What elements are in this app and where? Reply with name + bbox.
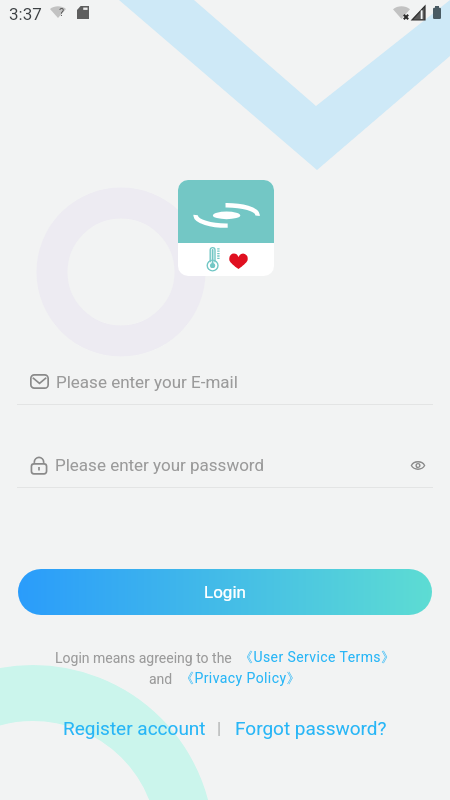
staticText: Forgot password? bbox=[235, 717, 387, 739]
button[interactable]: Forgot password? bbox=[235, 717, 387, 739]
button[interactable]: Register account bbox=[63, 717, 206, 739]
staticText: 《Privacy Policy》 bbox=[180, 670, 301, 688]
button[interactable]: Show password bbox=[403, 450, 433, 480]
staticText: 3:37 bbox=[9, 4, 42, 24]
staticText: Please enter your E-mail bbox=[56, 372, 238, 392]
button[interactable]: 《User Service Terms》 bbox=[239, 649, 396, 667]
button[interactable]: 《Privacy Policy》 bbox=[180, 670, 301, 688]
staticText: Please enter your password bbox=[55, 455, 265, 475]
staticText: Register account bbox=[63, 717, 206, 739]
staticText: 《User Service Terms》 bbox=[239, 649, 396, 667]
button[interactable]: Login bbox=[18, 569, 432, 615]
staticText: Login bbox=[204, 582, 246, 602]
staticText: | bbox=[217, 718, 222, 738]
staticText: Login means agreeing to the bbox=[55, 650, 239, 666]
staticText: ? bbox=[59, 6, 65, 19]
staticText: and bbox=[149, 671, 180, 687]
